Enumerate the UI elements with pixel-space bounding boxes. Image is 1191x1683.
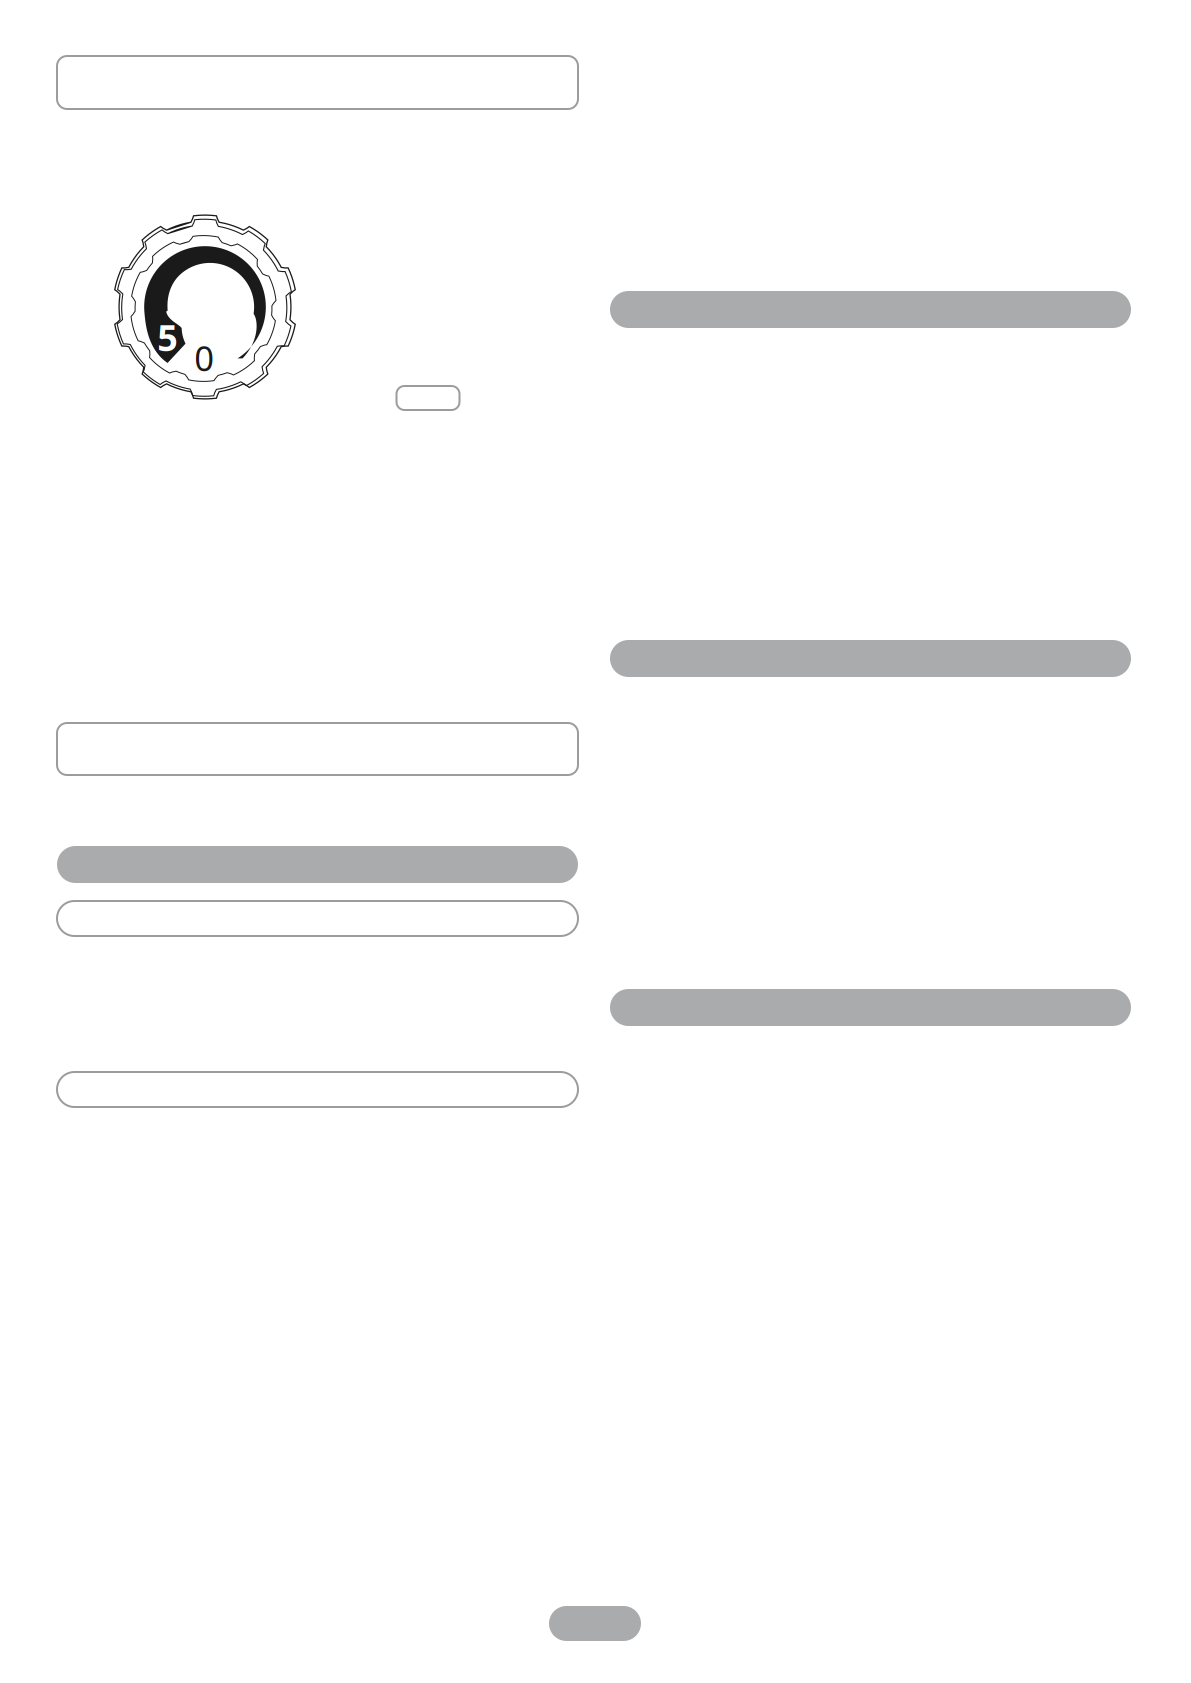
staticText: 0 — [194, 335, 214, 381]
button[interactable]: Row — [57, 1072, 578, 1107]
staticText: 5 — [157, 313, 178, 361]
button[interactable]: Row — [57, 901, 578, 936]
button[interactable]: Field — [57, 723, 578, 775]
button[interactable]: Tag — [396, 386, 459, 410]
button[interactable]: Title — [57, 56, 578, 109]
